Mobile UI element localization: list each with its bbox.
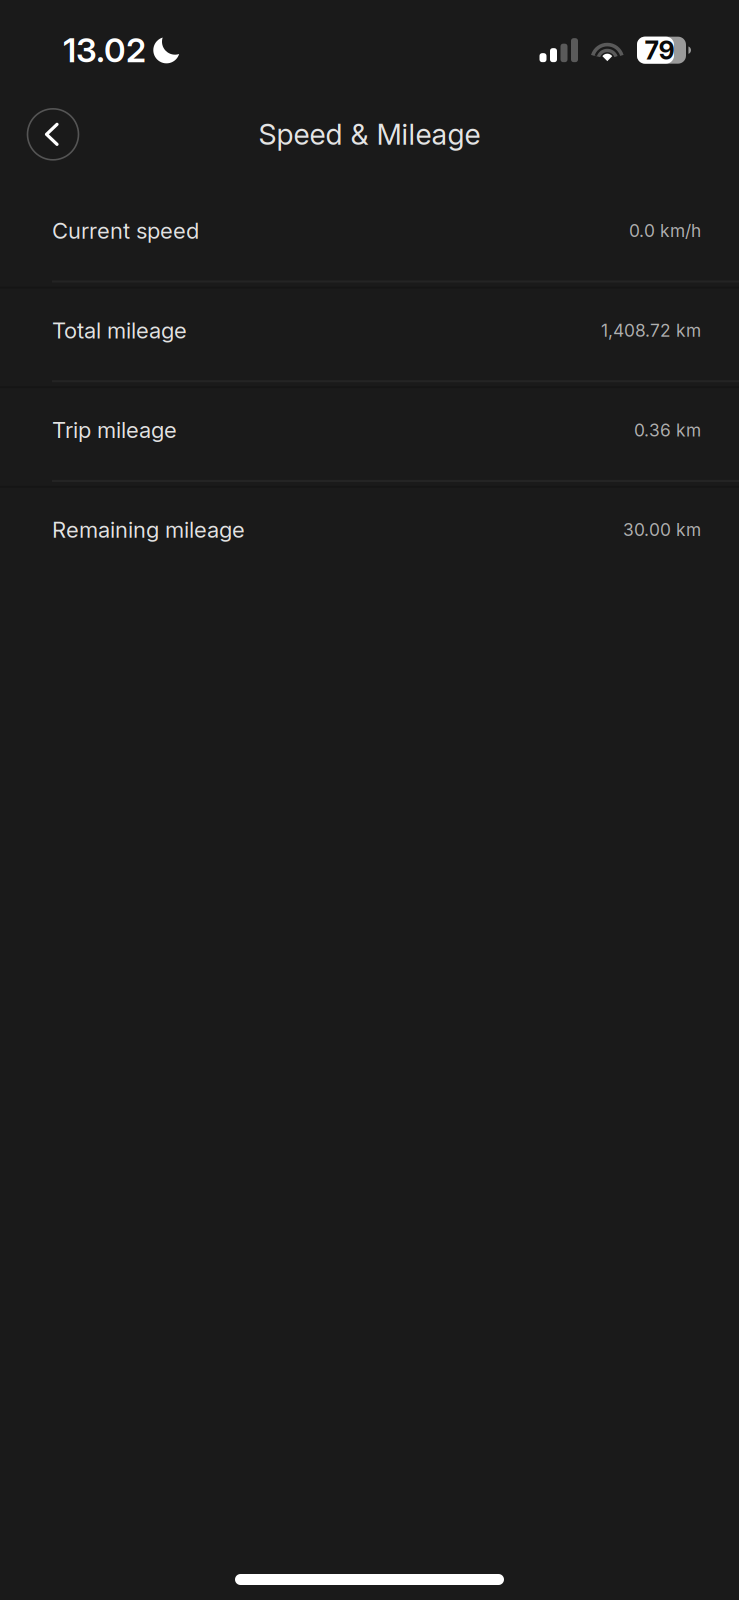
staticText: Total mileage bbox=[52, 317, 187, 344]
staticText: Speed & Mileage bbox=[258, 117, 480, 152]
button[interactable]: Remaining mileage bbox=[0, 480, 739, 580]
staticText: 0.0 km/h bbox=[629, 220, 701, 241]
button[interactable]: Current speed bbox=[0, 181, 739, 280]
staticText: 30.00 km bbox=[623, 519, 701, 540]
button[interactable]: Total mileage bbox=[0, 280, 739, 380]
button[interactable]: Trip mileage bbox=[0, 380, 739, 480]
staticText: 0.36 km bbox=[634, 420, 701, 441]
staticText: Trip mileage bbox=[52, 417, 177, 443]
staticText: 79 bbox=[644, 35, 674, 65]
staticText: 13.02 bbox=[63, 30, 146, 70]
staticText: Remaining mileage bbox=[52, 516, 245, 543]
staticText: 1,408.72 km bbox=[601, 320, 701, 341]
button[interactable]: Back bbox=[26, 107, 80, 161]
staticText: Current speed bbox=[52, 217, 199, 244]
